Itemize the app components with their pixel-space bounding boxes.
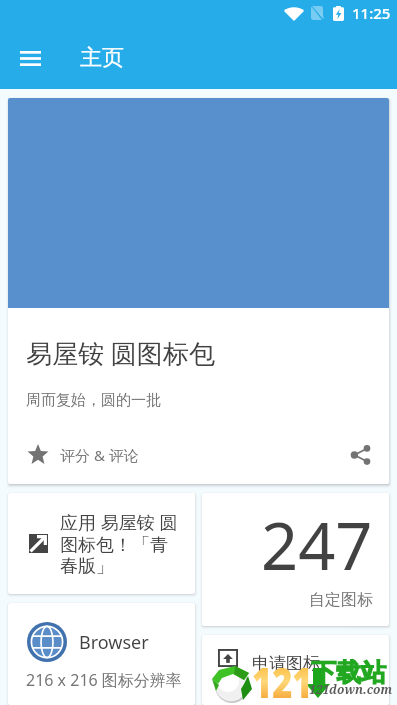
- staticText: 216 x 216 图标分辨率: [26, 669, 182, 691]
- staticText: 周而复始，圆的一批: [26, 391, 161, 410]
- button[interactable]: 应用 易屋铵 圆图标包！「青春版」: [8, 493, 195, 594]
- button[interactable]: 易屋铵 圆图标包: [8, 98, 389, 484]
- staticText: 11:25: [352, 3, 391, 23]
- staticText: 247: [261, 501, 373, 590]
- staticText: 申请图标: [252, 653, 320, 674]
- staticText: Browser: [79, 630, 149, 655]
- button[interactable]: 申请图标: [202, 635, 389, 705]
- staticText: 评分 & 评论: [60, 445, 139, 465]
- button[interactable]: 评分 & 评论: [22, 438, 144, 472]
- button[interactable]: Share: [344, 438, 378, 472]
- staticText: 易屋铵 圆图标包: [26, 335, 215, 371]
- button[interactable]: Open navigation menu: [9, 37, 51, 79]
- staticText: 应用 易屋铵 圆图标包！「青春版」: [60, 510, 185, 577]
- staticText: 主页: [80, 44, 124, 72]
- button[interactable]: Browser: [8, 603, 195, 705]
- staticText: 自定图标: [309, 590, 373, 610]
- staticText: 下载站: [311, 657, 386, 688]
- staticText: 121: [252, 652, 313, 705]
- staticText: 121down.com: [309, 681, 393, 697]
- button[interactable]: 247: [202, 493, 389, 626]
